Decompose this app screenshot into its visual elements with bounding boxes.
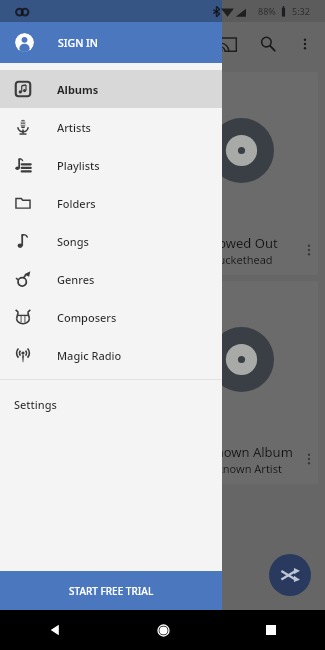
button[interactable]: Recents [217,610,325,650]
button[interactable]: Album options [300,241,318,259]
button[interactable]: Playlists [0,146,222,184]
button[interactable]: Magic Radio [0,336,222,374]
staticText: Settings [14,397,57,412]
button[interactable]: Giant Robot [7,72,159,275]
button[interactable]: Artists [0,108,222,146]
staticText: Unknown Artist [202,461,282,476]
staticText: Composers [57,310,117,325]
button[interactable]: Composers [0,298,222,336]
staticText: Genres [57,272,95,287]
button[interactable]: Unknown Album [165,281,318,484]
staticText: Blowed Out [206,234,278,252]
staticText: 88% [258,5,276,17]
button[interactable]: Albums [0,70,222,108]
button[interactable]: Search [248,24,288,64]
button[interactable]: START FREE TRIAL [0,571,222,610]
staticText: Buckethead [211,252,273,267]
button[interactable]: Settings [0,380,222,428]
staticText: START FREE TRIAL [69,584,154,598]
staticText: SIGN IN [58,36,98,50]
button[interactable]: More options [288,27,322,61]
staticText: Albums [57,82,99,97]
button[interactable]: Album options [300,450,318,468]
staticText: Artists [57,120,91,135]
button[interactable]: SIGN IN [0,22,222,63]
staticText: Songs [57,234,89,249]
staticText: 5:32 [292,5,310,17]
button[interactable]: Cast [208,24,248,64]
staticText: Unknown Album [191,443,293,461]
button[interactable]: Back [0,610,109,650]
button[interactable]: Genres [0,260,222,298]
staticText: Giant Robot [47,234,120,252]
button[interactable]: Shuffle [269,554,311,596]
staticText: Magic Radio [57,348,122,363]
button[interactable]: Home [109,610,217,650]
button[interactable]: Unknown Album [7,281,159,484]
staticText: Playlists [57,158,100,173]
button[interactable]: Folders [0,184,222,222]
button[interactable]: Blowed Out [165,72,318,275]
button[interactable]: Songs [0,222,222,260]
staticText: Folders [57,196,96,211]
